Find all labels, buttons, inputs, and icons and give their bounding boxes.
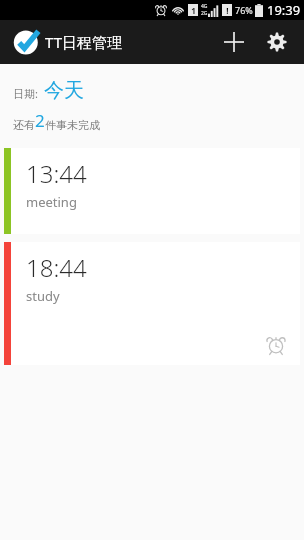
button[interactable]: 日期: (13, 76, 84, 101)
staticText: 今天 (44, 78, 84, 103)
staticText: ! (226, 5, 229, 16)
staticText: 件事未完成 (45, 118, 100, 132)
button[interactable]: Settings (255, 20, 299, 64)
staticText: 4G (201, 3, 208, 10)
staticText: 19:39 (267, 1, 301, 19)
staticText: 1 (191, 5, 196, 16)
button[interactable]: 18:44 (4, 242, 300, 365)
button[interactable]: TT日程管理 (12, 27, 122, 57)
staticText: 日期: (13, 86, 38, 101)
button[interactable]: Alarm reminder (263, 332, 289, 358)
staticText: 76% (235, 4, 253, 16)
button[interactable]: Add schedule (212, 20, 256, 64)
staticText: meeting (26, 193, 77, 211)
staticText: 2G (201, 10, 208, 17)
staticText: TT日程管理 (45, 32, 122, 52)
staticText: 2 (35, 109, 45, 132)
button[interactable]: 13:44 (4, 148, 300, 234)
staticText: 还有 (13, 118, 35, 132)
staticText: 18:44 (26, 251, 87, 284)
staticText: 13:44 (26, 157, 87, 190)
staticText: study (26, 287, 60, 305)
